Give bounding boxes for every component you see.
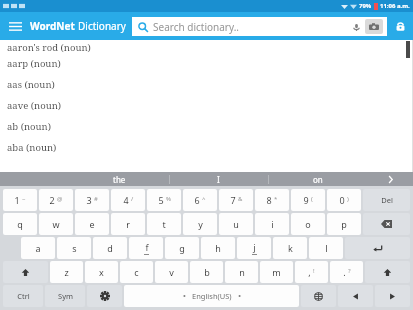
staticText: 4 [123,194,129,206]
button[interactable]: c [120,261,153,283]
button[interactable]: j [237,237,271,259]
staticText: j [253,241,256,253]
button[interactable]: Shift [365,261,410,283]
button[interactable]: Right [375,285,410,307]
staticText: , [308,266,311,278]
button[interactable]: 7 [219,189,253,211]
staticText: # [94,195,98,203]
button[interactable]: WordNet [30,19,126,33]
staticText: ( [311,195,313,203]
staticText: ! [313,267,315,275]
staticText: m [272,266,281,278]
staticText: aba (noun) [7,141,57,154]
staticText: k [288,242,293,254]
button[interactable]: 9 [291,189,325,211]
button[interactable]: aave (noun) [0,95,413,116]
button[interactable]: t [147,213,181,235]
button[interactable]: English(US) [124,285,299,307]
button[interactable]: 4 [111,189,145,211]
button[interactable]: g [165,237,199,259]
button[interactable]: 8 [255,189,289,211]
button[interactable]: Del [363,189,410,211]
staticText: u [233,218,239,230]
button[interactable]: 3 [75,189,109,211]
button[interactable]: d [93,237,127,259]
button[interactable]: I [169,172,268,186]
button[interactable]: ab (noun) [0,116,413,137]
staticText: h [215,242,221,254]
button[interactable]: y [183,213,217,235]
button[interactable]: Menu [0,12,30,40]
staticText: n [239,266,245,278]
button[interactable]: on [268,172,367,186]
button[interactable]: Voice search [347,18,365,36]
staticText: I [217,174,220,185]
button[interactable]: 6 [183,189,217,211]
button[interactable]: Settings [87,285,122,307]
staticText: ~ [22,195,26,203]
staticText: p [341,218,347,230]
button[interactable]: i [255,213,289,235]
button[interactable]: z [50,261,83,283]
button[interactable]: 2 [39,189,73,211]
button[interactable]: Language [301,285,336,307]
button[interactable]: o [291,213,325,235]
button[interactable]: u [219,213,253,235]
staticText: r [126,218,130,230]
staticText: g [179,242,185,254]
button[interactable]: m [260,261,293,283]
button[interactable]: v [155,261,188,283]
button[interactable]: Sym [45,285,85,307]
button[interactable]: 5 [147,189,181,211]
button[interactable]: Shift [3,261,48,283]
button[interactable]: 0 [327,189,361,211]
button[interactable]: h [201,237,235,259]
button[interactable]: Enter [345,237,410,259]
staticText: t [162,218,166,230]
button[interactable]: b [190,261,223,283]
button[interactable]: the [70,172,169,186]
button[interactable]: Ctrl [3,285,43,307]
button[interactable]: r [111,213,145,235]
staticText: aaron's rod (noun) [7,41,91,53]
staticText: Ctrl [17,291,30,301]
button[interactable]: Lock [387,12,413,40]
button[interactable]: Backspace [363,213,410,235]
button[interactable]: p [327,213,361,235]
button[interactable]: n [225,261,258,283]
staticText: Sym [58,291,73,301]
button[interactable]: More suggestions [367,172,413,186]
staticText: . [343,266,346,278]
button[interactable]: . [330,261,363,283]
staticText: WordNet [30,19,78,33]
button[interactable]: x [85,261,118,283]
button[interactable]: w [39,213,73,235]
staticText: d [107,242,113,254]
staticText: b [204,266,210,278]
button[interactable]: 1 [3,189,37,211]
staticText: aave (noun) [7,99,62,112]
button[interactable]: aba (noun) [0,137,413,158]
button[interactable]: q [3,213,37,235]
button[interactable]: Left [338,285,373,307]
staticText: 3 [86,194,92,206]
button[interactable]: aarp (noun) [0,53,413,74]
button[interactable]: k [273,237,307,259]
staticText: l [325,242,328,254]
button[interactable]: f [129,237,163,259]
button[interactable]: aaron's rod (noun) [0,41,413,53]
staticText: 11:06 a.m. [380,2,410,10]
button[interactable]: Camera search [365,19,383,34]
button[interactable]: e [75,213,109,235]
button[interactable]: l [309,237,343,259]
button[interactable]: s [57,237,91,259]
button[interactable]: , [295,261,328,283]
staticText: q [17,218,23,230]
button[interactable]: Search dictionary.. [132,17,387,36]
button[interactable]: aas (noun) [0,74,413,95]
staticText: 7 [230,194,236,206]
button[interactable]: a [21,237,55,259]
staticText: English(US) [192,291,232,301]
staticText: o [305,218,311,230]
